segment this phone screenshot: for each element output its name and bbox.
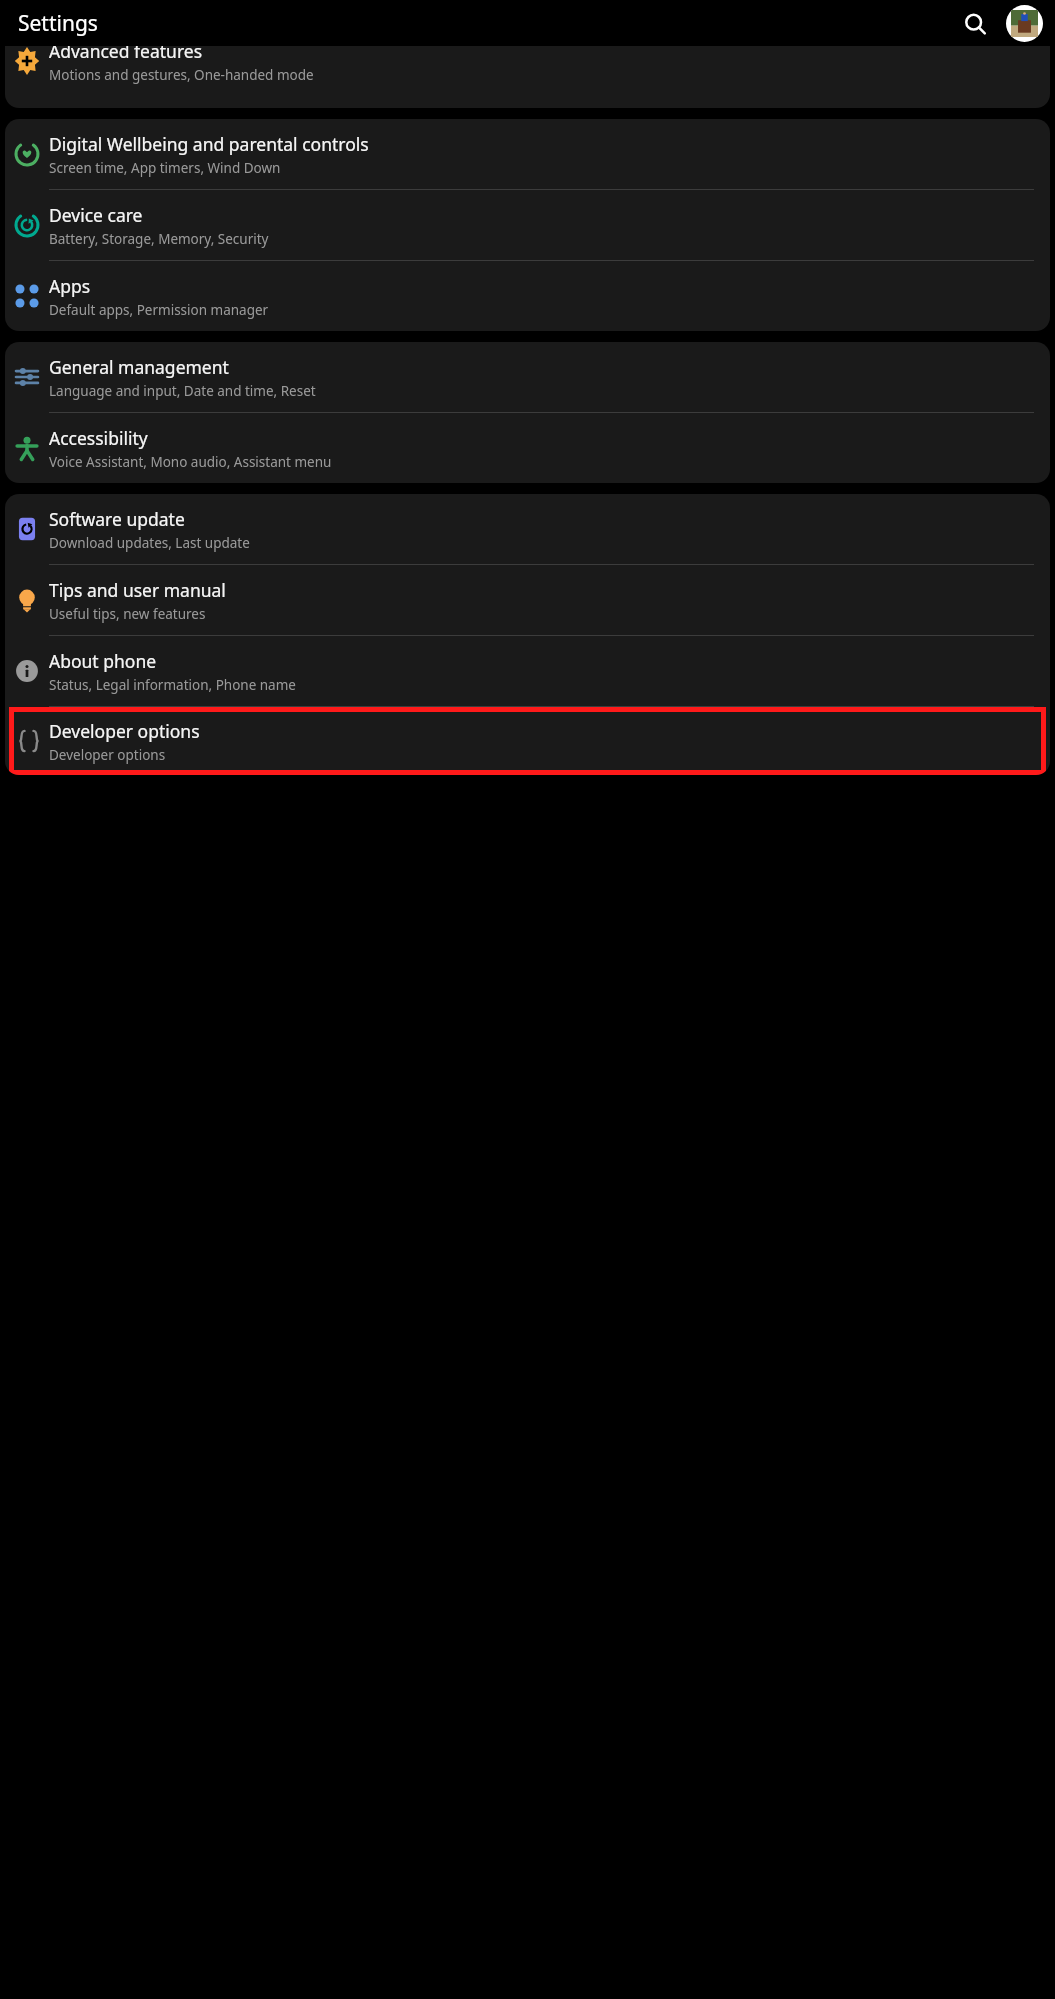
button[interactable]: Tips and user manual [5, 565, 1050, 635]
staticText: Software update [49, 507, 185, 531]
button[interactable]: Software update [5, 494, 1050, 564]
staticText: Screen time, App timers, Wind Down [49, 159, 281, 177]
staticText: Developer options [49, 746, 166, 764]
button[interactable]: Search [957, 6, 993, 42]
staticText: Voice Assistant, Mono audio, Assistant m… [49, 453, 332, 471]
button[interactable]: Device care [5, 190, 1050, 260]
staticText: Motions and gestures, One-handed mode [49, 66, 314, 84]
staticText: Language and input, Date and time, Reset [49, 382, 316, 400]
button[interactable]: Apps [5, 261, 1050, 331]
staticText: Default apps, Permission manager [49, 301, 269, 319]
staticText: Download updates, Last update [49, 534, 250, 552]
button[interactable]: General management [5, 342, 1050, 412]
staticText: General management [49, 355, 229, 379]
staticText: Accessibility [49, 426, 148, 450]
button[interactable]: About phone [5, 636, 1050, 706]
staticText: Developer options [49, 719, 200, 743]
staticText: Settings [18, 9, 98, 38]
button[interactable]: Profile [1006, 5, 1043, 42]
staticText: Apps [49, 274, 91, 298]
staticText: About phone [49, 649, 157, 673]
staticText: Useful tips, new features [49, 605, 206, 623]
staticText: Battery, Storage, Memory, Security [49, 230, 269, 248]
button[interactable]: Accessibility [5, 413, 1050, 483]
staticText: Status, Legal information, Phone name [49, 676, 296, 694]
button[interactable]: Developer options [9, 707, 1046, 775]
staticText: Advanced features [49, 46, 203, 63]
button[interactable]: Advanced features [5, 46, 1050, 108]
staticText: Tips and user manual [49, 578, 226, 602]
staticText: Digital Wellbeing and parental controls [49, 132, 369, 156]
button[interactable]: Digital Wellbeing and parental controls [5, 119, 1050, 189]
staticText: Device care [49, 203, 143, 227]
